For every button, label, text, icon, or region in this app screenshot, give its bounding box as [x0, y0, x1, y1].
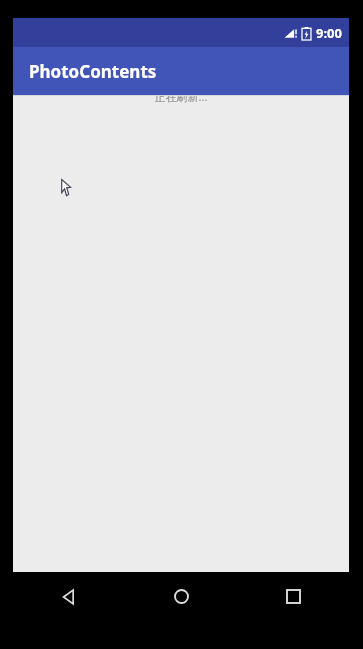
button[interactable]: Home — [125, 572, 237, 621]
staticText: 正在刷新... — [13, 95, 349, 104]
staticText: PhotoContents — [29, 60, 157, 83]
button[interactable]: PhotoContents — [13, 47, 349, 95]
button[interactable]: Back — [13, 572, 125, 621]
button[interactable]: Recent apps — [237, 572, 349, 621]
staticText: 9:00 — [316, 24, 342, 42]
